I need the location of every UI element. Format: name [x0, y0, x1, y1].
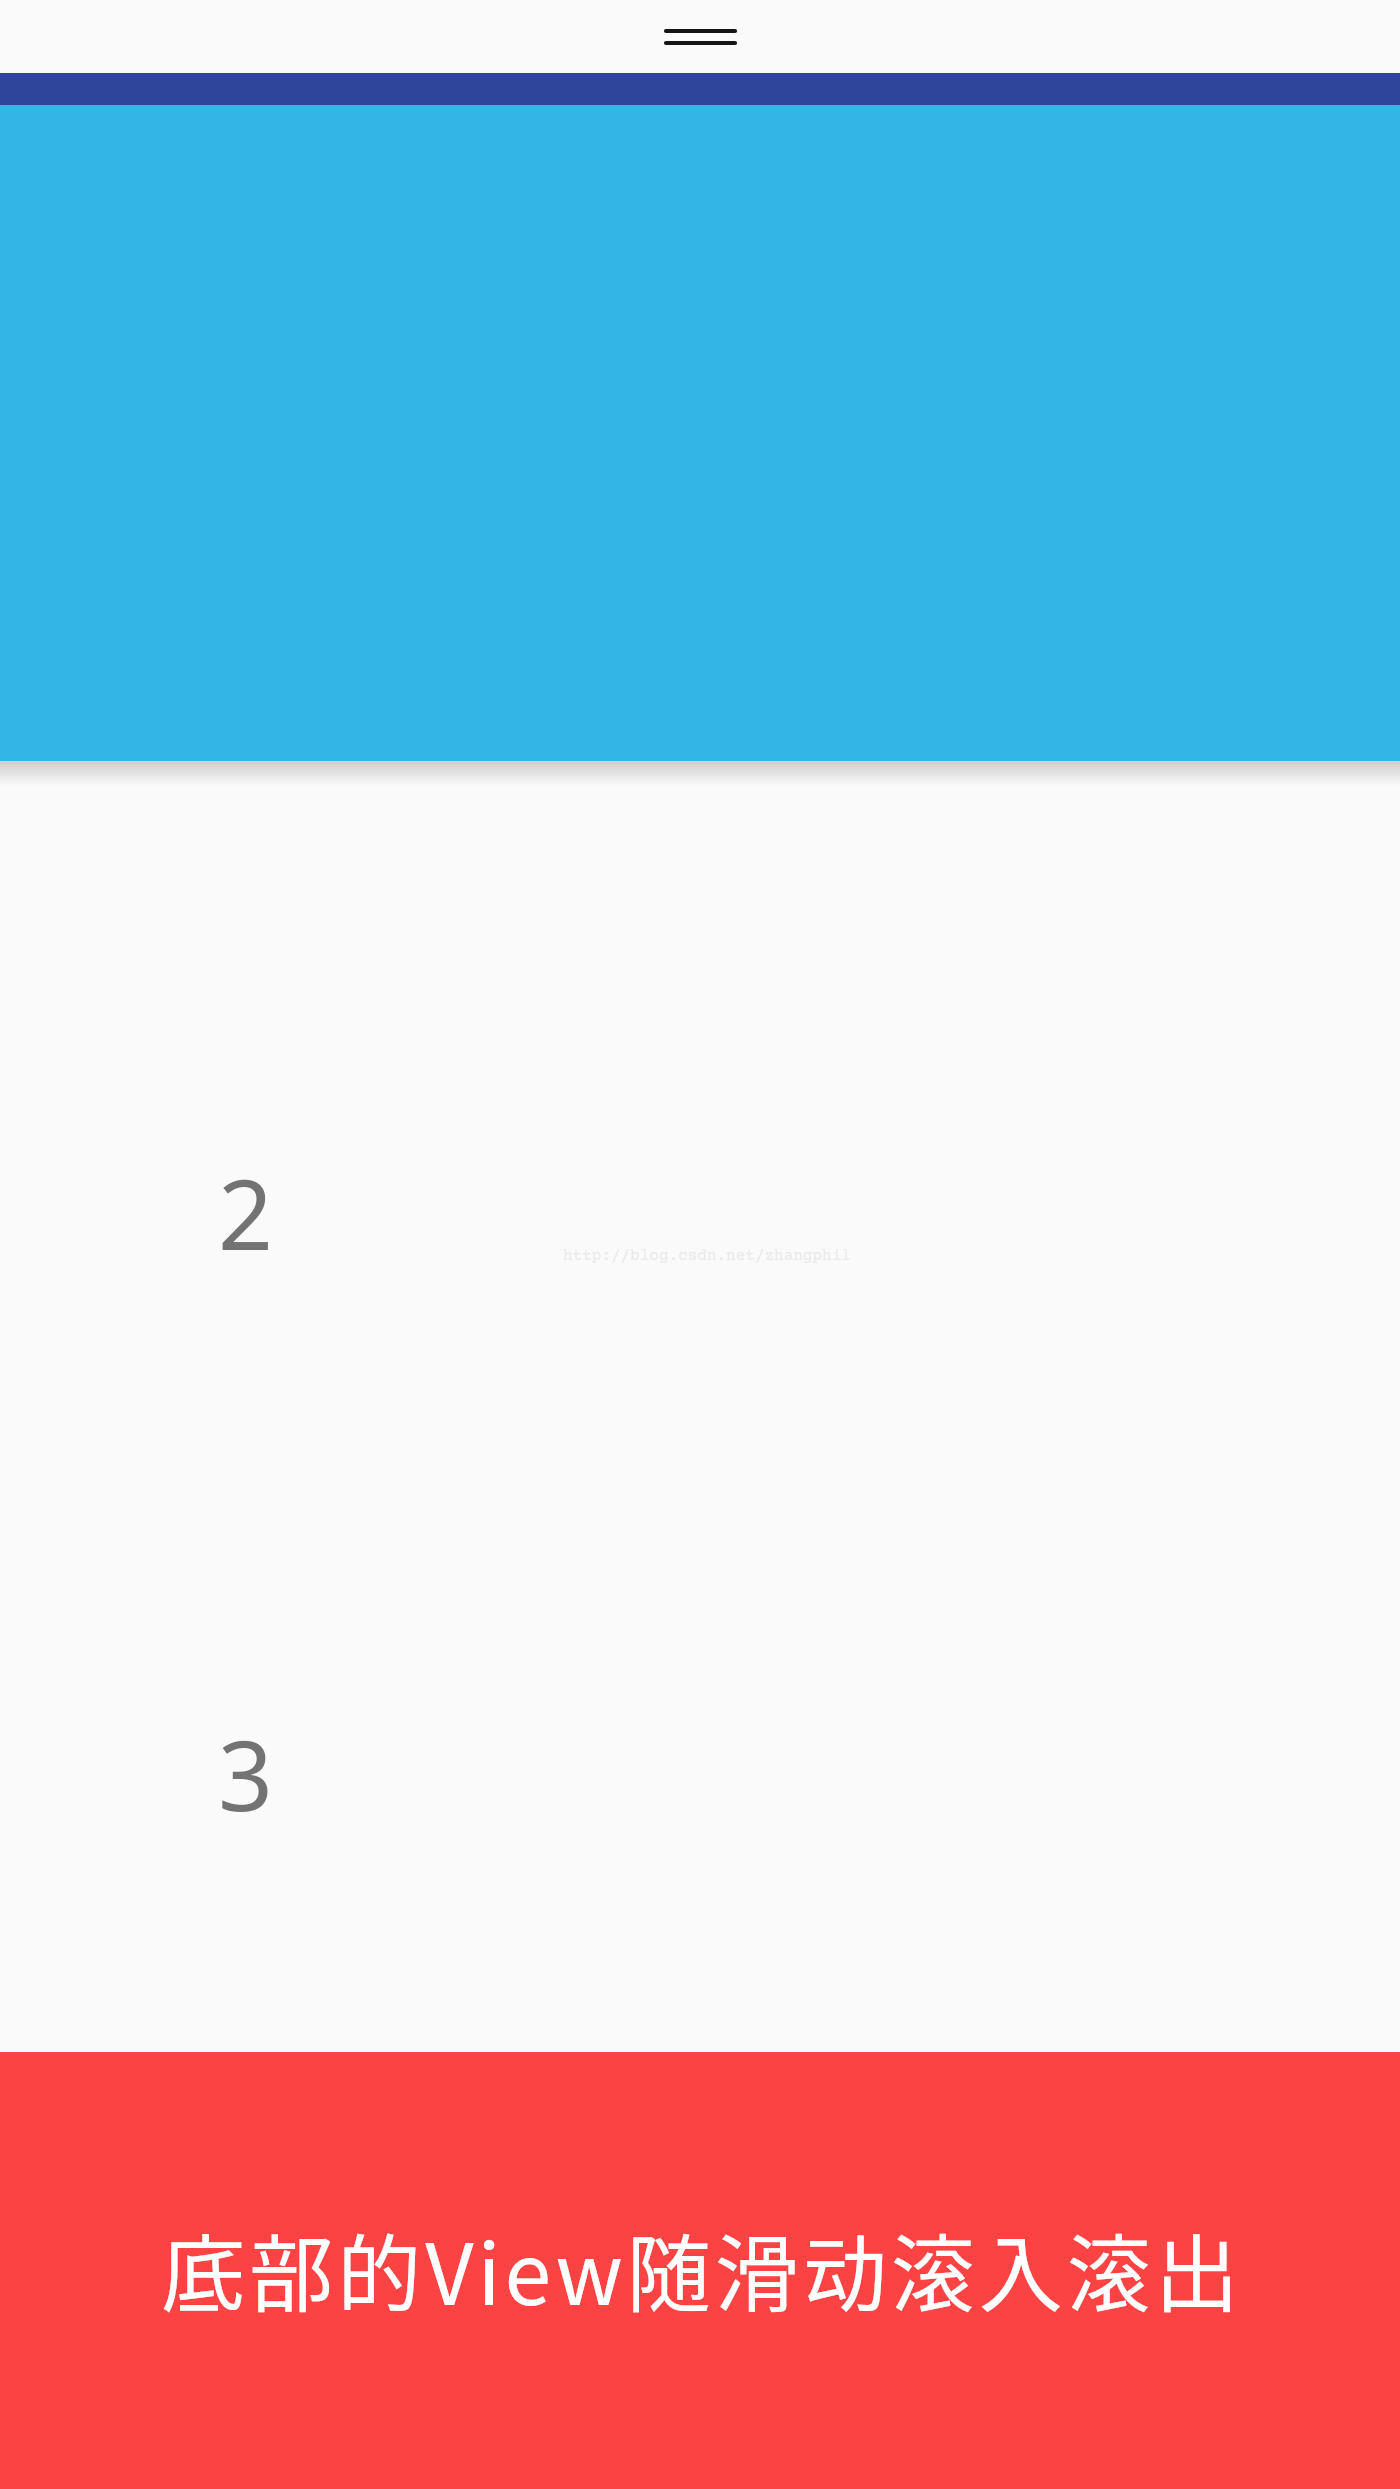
button[interactable]: 1 [0, 553, 1400, 1114]
staticText: http://blog.csdn.net/zhangphil [563, 1247, 851, 1265]
button[interactable]: 3 [0, 1675, 1400, 2236]
button[interactable]: 2 [0, 1114, 1400, 1675]
staticText: 3 [218, 1708, 273, 1839]
button[interactable]: 底部的View随滑动滚入滚出 [0, 2052, 1400, 2489]
staticText: 2 [218, 1147, 273, 1278]
staticText: 底部的View随滑动滚入滚出 [161, 2208, 1243, 2330]
button[interactable]: Menu [0, 0, 1400, 73]
